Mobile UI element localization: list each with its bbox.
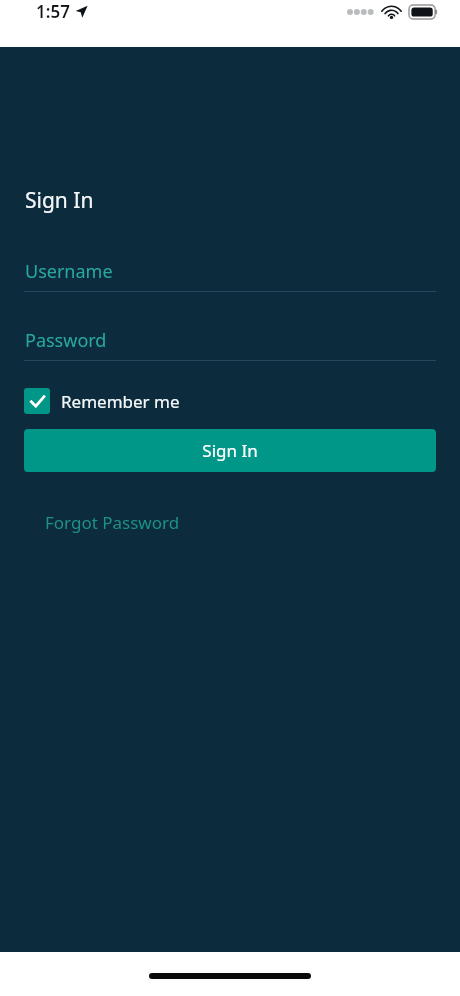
button[interactable]: Sign In <box>24 429 436 472</box>
staticText: Password <box>25 328 107 353</box>
button[interactable]: Password <box>24 328 436 361</box>
staticText: Forgot Password <box>45 511 180 534</box>
button[interactable]: Username <box>24 259 436 292</box>
staticText: Sign In <box>25 186 94 215</box>
other: Home indicator <box>149 973 311 979</box>
staticText: Username <box>25 259 113 284</box>
staticText: Sign In <box>202 439 258 462</box>
button[interactable]: Forgot Password <box>32 505 193 540</box>
staticText: 1:57 <box>36 0 70 23</box>
staticText: Remember me <box>61 390 180 413</box>
button[interactable]: Remember me <box>24 388 180 414</box>
